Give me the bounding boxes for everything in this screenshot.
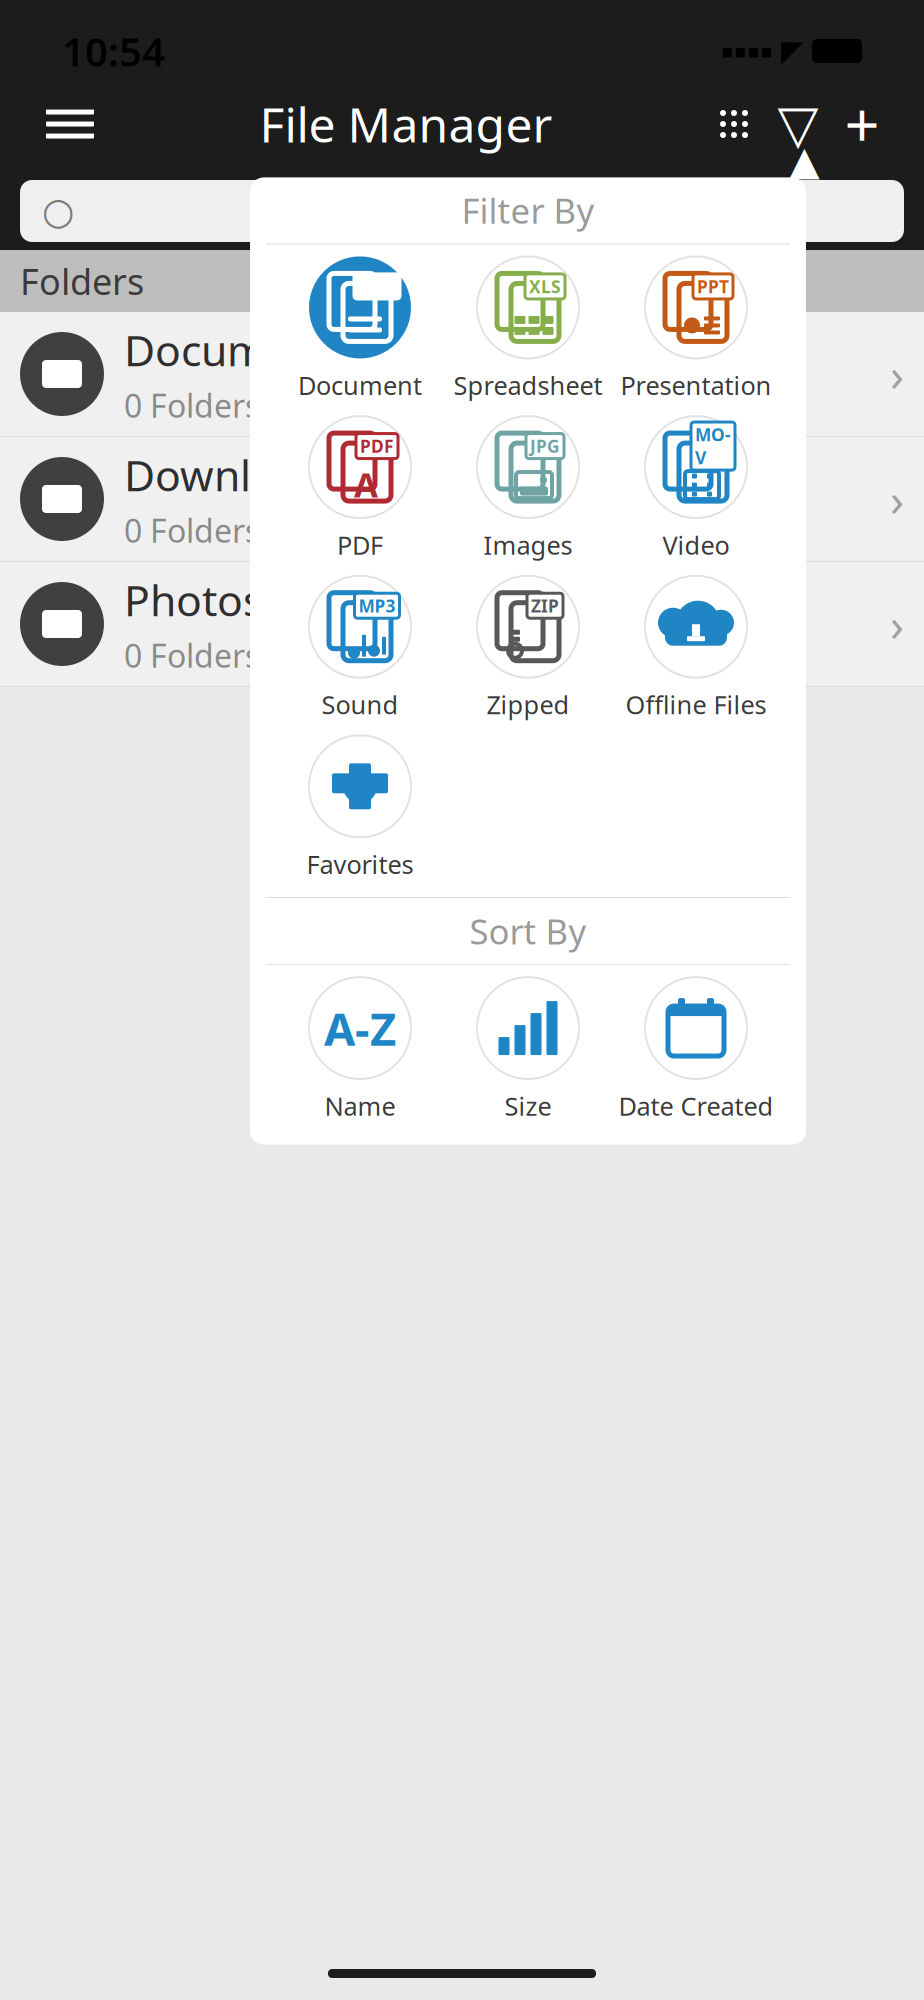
staticText: 0 Folders, 0 Files <box>124 634 369 677</box>
button[interactable]: Offline Files <box>612 572 780 725</box>
staticText: ▲ <box>789 138 820 183</box>
staticText: MOV <box>695 423 731 469</box>
staticText: › <box>890 469 904 529</box>
button[interactable]: Grid view <box>706 96 762 152</box>
staticText: Filter By <box>461 187 594 233</box>
button[interactable]: PPT <box>612 252 780 406</box>
staticText: ▽ <box>777 94 818 154</box>
staticText: 10:54 <box>62 24 165 77</box>
staticText: ○ <box>42 190 75 232</box>
staticText: Zipped <box>486 688 569 721</box>
button[interactable]: ZIP <box>444 572 612 725</box>
staticText: Sound <box>321 688 398 721</box>
button[interactable]: Downloads <box>0 437 924 562</box>
staticText: › <box>890 594 904 654</box>
staticText: Favorites <box>306 847 413 881</box>
button[interactable]: Add <box>834 96 890 152</box>
button[interactable]: A-Z <box>276 973 444 1127</box>
button[interactable]: DOC <box>276 252 444 406</box>
staticText: A-Z <box>324 998 396 1058</box>
staticText: 0 Folders, 0 Files <box>124 509 369 552</box>
staticText: › <box>890 344 904 404</box>
staticText: ◤ <box>781 34 804 68</box>
staticText: PDF <box>360 435 394 458</box>
staticText: ZIP <box>531 594 559 617</box>
button[interactable]: Filter <box>770 96 826 152</box>
staticText: + <box>844 83 879 165</box>
staticText: Photos <box>124 571 263 628</box>
staticText: XLS <box>529 275 561 298</box>
button[interactable]: Documents <box>0 312 924 437</box>
button[interactable]: PDF <box>276 412 444 566</box>
staticText: Offline Files <box>625 688 766 721</box>
staticText: JPG <box>530 435 560 458</box>
button[interactable]: MOV <box>612 412 780 566</box>
button[interactable]: Photos <box>0 562 924 687</box>
button[interactable]: Date Created <box>612 973 780 1127</box>
staticText: Documents <box>124 321 352 378</box>
button[interactable]: Favorites <box>276 731 444 885</box>
staticText: PDF <box>337 528 383 562</box>
staticText: Downloads <box>124 446 347 503</box>
staticText: File Manager <box>259 92 552 156</box>
staticText: Name <box>324 1089 395 1123</box>
staticText: Sort By <box>469 908 586 954</box>
button[interactable]: JPG <box>444 412 612 566</box>
button[interactable]: Size <box>444 973 612 1127</box>
staticText: Presentation <box>620 368 771 402</box>
staticText: ▪▪▪▪ <box>721 40 773 62</box>
staticText: Date Created <box>618 1089 773 1123</box>
staticText: 0 Folders, 0 Files <box>124 384 369 427</box>
staticText: Spreadsheet <box>453 368 602 402</box>
button[interactable]: XLS <box>444 252 612 406</box>
staticText: PPT <box>697 275 729 298</box>
button[interactable]: MP3 <box>276 572 444 725</box>
staticText: Document <box>298 368 422 402</box>
staticText: Images <box>483 528 572 562</box>
staticText: MP3 <box>358 594 395 617</box>
staticText: Video <box>662 528 729 562</box>
staticText: Size <box>504 1089 551 1123</box>
staticText: A <box>354 461 378 507</box>
button[interactable]: Menu <box>34 94 106 154</box>
staticText: Folders <box>20 257 144 305</box>
